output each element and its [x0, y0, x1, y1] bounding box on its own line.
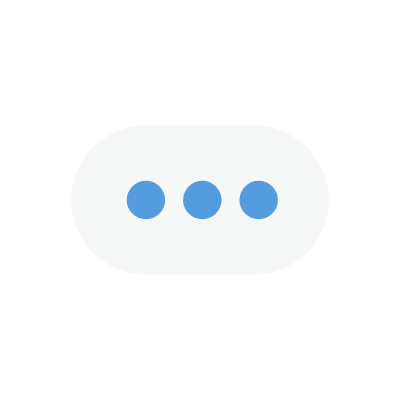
- button[interactable]: Typing indicator, more options: [71, 125, 329, 275]
